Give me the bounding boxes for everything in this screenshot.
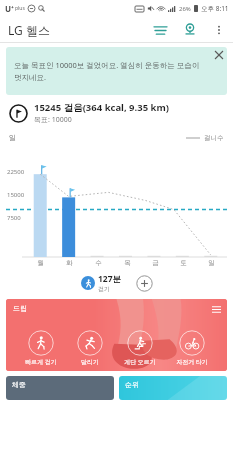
staticText: 15000	[7, 191, 25, 199]
staticText: 목표: 10000	[34, 115, 72, 125]
staticText: U⁺	[5, 3, 14, 14]
staticText: 빠르게 걷기	[25, 358, 57, 366]
button[interactable]: 자전거 타기	[175, 330, 209, 366]
staticText: 달리기	[81, 358, 99, 366]
staticText: 계단 오르기	[124, 358, 156, 366]
button[interactable]: 체중	[6, 376, 114, 400]
staticText: 걷기	[98, 285, 110, 293]
button[interactable]: 빠르게 걷기	[24, 330, 58, 366]
staticText: 토	[180, 259, 187, 267]
staticText: 순위	[125, 380, 139, 389]
staticText: 체중	[12, 380, 26, 389]
staticText: 오후 8:11	[201, 4, 229, 13]
button[interactable]: 순위	[119, 376, 227, 400]
staticText: 드립	[13, 304, 27, 313]
staticText: 월	[37, 259, 44, 267]
staticText: 일	[9, 133, 16, 142]
staticText: 15245 걸음(364 kcal, 9.35 km)	[34, 101, 169, 114]
staticText: 자전거 타기	[176, 358, 208, 366]
button[interactable]: 메뉴	[210, 303, 222, 315]
button[interactable]: 목록	[150, 20, 170, 40]
staticText: LG 헬스	[8, 22, 50, 38]
button[interactable]: 127분	[81, 273, 122, 293]
staticText: 걸니수	[204, 134, 224, 142]
staticText: plus	[15, 5, 25, 12]
button[interactable]: 드립	[6, 299, 227, 371]
staticText: 금	[152, 259, 159, 267]
staticText: 26%	[179, 5, 191, 13]
button[interactable]: 계단 오르기	[123, 330, 157, 366]
staticText: 오늘 목표인 10000보 걸었어요. 열심히 운동하는 모습이 멋지네요.	[14, 60, 207, 83]
button[interactable]: 오늘 목표인 10000보 걸었어요. 열심히 운동하는 모습이 멋지네요.	[6, 47, 227, 95]
staticText: 수	[95, 259, 102, 267]
staticText: 화	[66, 259, 73, 267]
button[interactable]: 위치	[180, 20, 200, 40]
staticText: 22500	[7, 168, 25, 176]
button[interactable]: 달리기	[76, 330, 104, 366]
button[interactable]: 더보기	[210, 21, 228, 39]
staticText: 7500	[7, 214, 21, 222]
button[interactable]: 추가	[136, 275, 153, 292]
button[interactable]: 닫기	[211, 47, 227, 63]
staticText: 127분	[98, 273, 122, 285]
button[interactable]: 15245 걸음(364 kcal, 9.35 km)	[9, 101, 224, 125]
staticText: 일	[208, 259, 215, 267]
staticText: 목	[124, 259, 131, 267]
